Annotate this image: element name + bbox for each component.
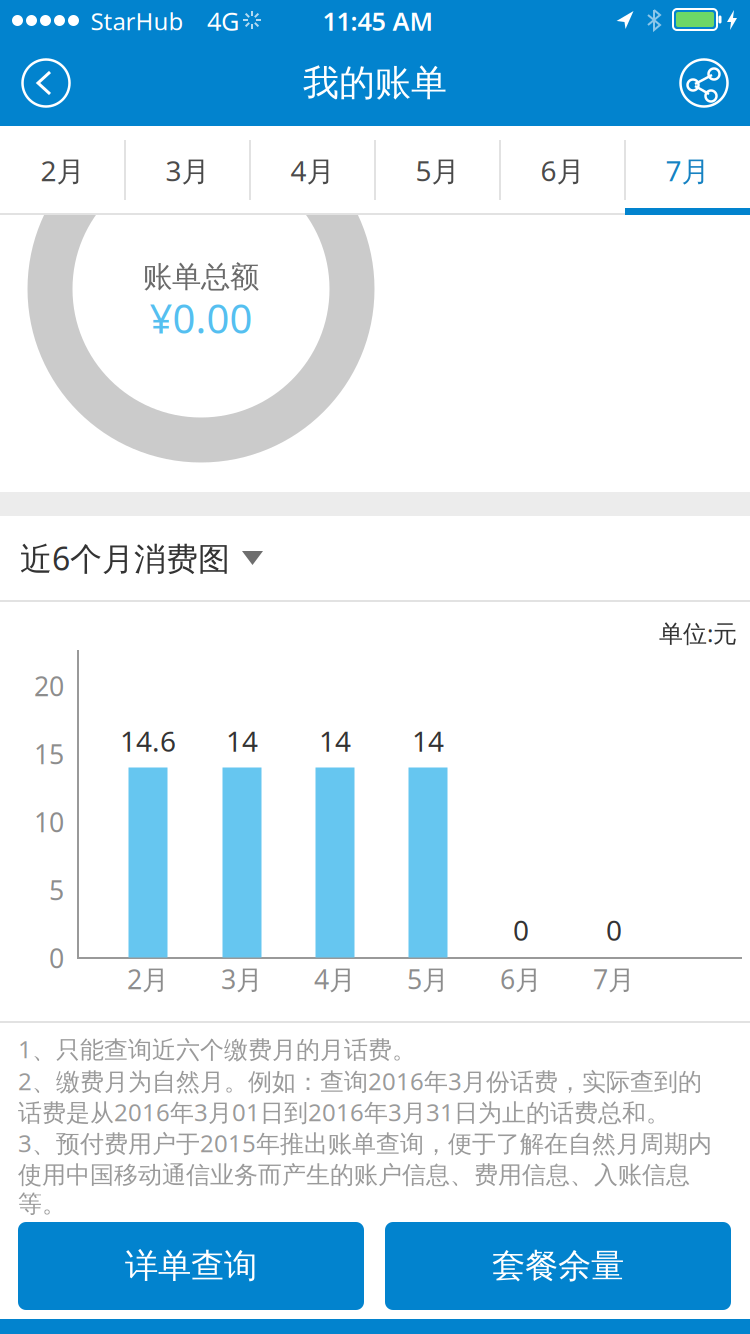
staticText: 等。 <box>18 1189 66 1219</box>
staticText: 15 <box>34 736 64 772</box>
staticText: 4G <box>207 4 239 38</box>
button[interactable]: 详单查询 <box>18 1222 364 1310</box>
button[interactable]: 2月 <box>0 126 125 215</box>
staticText: 6月 <box>540 152 584 189</box>
staticText: 5月 <box>407 961 449 997</box>
staticText: 3、预付费用户于2015年推出账单查询，便于了解在自然月周期内 <box>18 1127 712 1159</box>
staticText: 使用中国移动通信业务而产生的账户信息、费用信息、入账信息 <box>18 1160 690 1190</box>
button[interactable]: 7月 <box>625 126 750 215</box>
staticText: 我的账单 <box>303 61 447 105</box>
staticText: 详单查询 <box>125 1245 257 1286</box>
button[interactable]: Share <box>672 51 736 115</box>
staticText: 2月 <box>40 152 84 189</box>
staticText: 4月 <box>290 152 334 189</box>
staticText: 3月 <box>221 961 263 997</box>
staticText: 2月 <box>127 961 169 997</box>
staticText: 0 <box>606 911 622 949</box>
staticText: 单位:元 <box>659 617 737 649</box>
staticText: 账单总额 <box>143 259 259 295</box>
button[interactable]: 6月 <box>500 126 625 215</box>
staticText: 14 <box>319 722 351 760</box>
staticText: 0 <box>513 911 529 949</box>
staticText: 4月 <box>314 961 356 997</box>
button[interactable]: Back <box>14 51 78 115</box>
staticText: 3月 <box>165 152 209 189</box>
staticText: 20 <box>34 668 64 704</box>
staticText: 7月 <box>593 961 635 997</box>
staticText: 11:45 AM <box>322 4 433 38</box>
staticText: 10 <box>34 804 64 840</box>
staticText: 7月 <box>665 152 709 189</box>
button[interactable]: 3月 <box>125 126 250 215</box>
staticText: 14 <box>226 722 258 760</box>
button[interactable]: 套餐余量 <box>385 1222 731 1310</box>
staticText: StarHub <box>90 5 183 37</box>
staticText: ¥0.00 <box>149 291 252 344</box>
staticText: 0 <box>49 940 64 976</box>
staticText: 话费是从2016年3月01日到2016年3月31日为止的话费总和。 <box>18 1096 670 1128</box>
staticText: 2、缴费月为自然月。例如：查询2016年3月份话费，实际查到的 <box>18 1065 702 1097</box>
staticText: 14 <box>412 722 444 760</box>
staticText: 5月 <box>415 152 459 189</box>
staticText: 14.6 <box>120 722 176 760</box>
button[interactable]: 近6个月消费图 <box>0 516 750 600</box>
staticText: 1、只能查询近六个缴费月的月话费。 <box>18 1033 416 1065</box>
staticText: 6月 <box>500 961 542 997</box>
staticText: 5 <box>49 872 64 908</box>
button[interactable]: 4月 <box>250 126 375 215</box>
staticText: 近6个月消费图 <box>20 537 230 579</box>
staticText: 套餐余量 <box>492 1245 624 1286</box>
button[interactable]: 5月 <box>375 126 500 215</box>
